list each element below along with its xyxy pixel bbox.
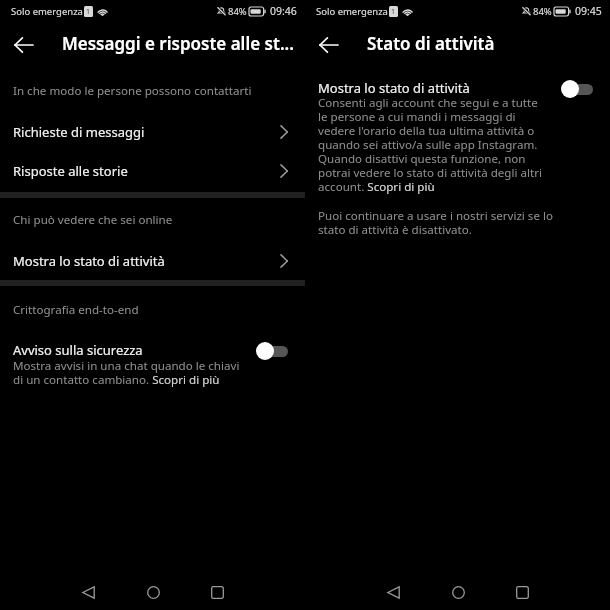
staticText: 1 bbox=[86, 7, 91, 17]
staticText: 09:46 bbox=[270, 4, 297, 18]
button[interactable]: Toggle bbox=[561, 80, 593, 98]
staticText: 84% bbox=[533, 5, 552, 18]
staticText: Solo emergenza bbox=[316, 5, 388, 18]
button[interactable]: Back bbox=[72, 576, 104, 608]
staticText: Crittografia end-to-end bbox=[13, 302, 139, 318]
button[interactable]: Mostra lo stato di attività bbox=[0, 241, 305, 280]
staticText: Richieste di messaggi bbox=[13, 123, 280, 141]
staticText: 1 bbox=[391, 7, 396, 17]
button[interactable]: Back bbox=[377, 576, 409, 608]
staticText: Mostra lo stato di attività bbox=[13, 252, 280, 270]
button[interactable]: Back bbox=[308, 24, 350, 66]
button[interactable]: Recent apps bbox=[201, 576, 233, 608]
staticText: Messaggi e risposte alle st... bbox=[62, 32, 294, 55]
button[interactable]: Home bbox=[137, 576, 169, 608]
staticText: Puoi continuare a usare i nostri servizi… bbox=[318, 208, 553, 237]
button[interactable]: Richieste di messaggi bbox=[0, 112, 305, 151]
staticText: Stato di attività bbox=[367, 32, 495, 55]
staticText: Solo emergenza bbox=[11, 5, 83, 18]
button[interactable]: Toggle bbox=[256, 342, 288, 360]
staticText: Mostra lo stato di attività bbox=[318, 79, 470, 97]
button[interactable]: Recent apps bbox=[506, 576, 538, 608]
staticText: 84% bbox=[228, 5, 247, 18]
staticText: Chi può vedere che sei online bbox=[13, 212, 173, 228]
staticText: Consenti agli account che segui e a tutt… bbox=[318, 95, 542, 194]
button[interactable]: Risposte alle storie bbox=[0, 151, 305, 190]
staticText: Avviso sulla sicurezza bbox=[13, 341, 143, 359]
staticText: In che modo le persone possono contattar… bbox=[13, 83, 252, 99]
staticText: Mostra avvisi in una chat quando le chia… bbox=[13, 358, 240, 387]
staticText: 09:45 bbox=[575, 4, 602, 18]
button[interactable]: Back bbox=[3, 24, 45, 66]
button[interactable]: Home bbox=[442, 576, 474, 608]
staticText: Risposte alle storie bbox=[13, 162, 280, 180]
